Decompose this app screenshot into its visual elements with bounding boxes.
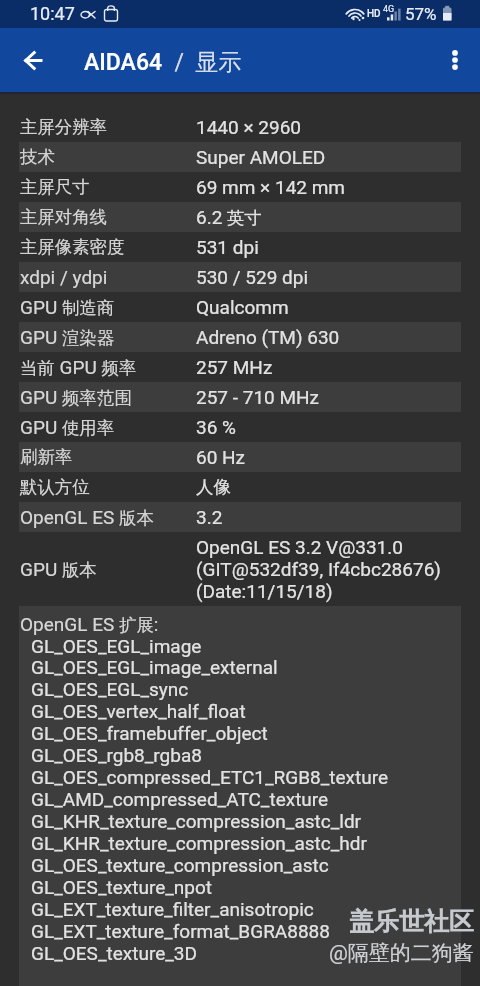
- staticText: 257 - 710 MHz: [196, 386, 320, 408]
- staticText: 4G: [383, 4, 395, 15]
- staticText: HD: [367, 8, 381, 20]
- staticText: / 显示: [163, 48, 242, 77]
- button[interactable]: 主屏对角线: [0, 202, 480, 232]
- staticText: 530 / 529 dpi: [196, 266, 309, 288]
- staticText: @隔壁的二狗酱: [329, 940, 474, 966]
- button[interactable]: GPU 版本: [0, 532, 480, 606]
- button[interactable]: 当前 GPU 频率: [0, 352, 480, 382]
- staticText: 人像: [196, 476, 231, 498]
- button[interactable]: OpenGL ES 扩展:: [0, 606, 480, 986]
- staticText: 刷新率: [20, 446, 73, 468]
- staticText: 盖乐世社区: [349, 906, 474, 937]
- staticText: GL_OES_EGL_image GL_OES_EGL_image_extern…: [31, 635, 389, 965]
- button[interactable]: xdpi / ydpi: [0, 262, 480, 292]
- staticText: 主屏对角线: [20, 206, 107, 228]
- button[interactable]: 主屏尺寸: [0, 172, 480, 202]
- button[interactable]: 刷新率: [0, 442, 480, 472]
- staticText: GPU 渲染器: [20, 326, 115, 349]
- button[interactable]: Back: [9, 36, 57, 84]
- staticText: Adreno (TM) 630: [196, 326, 340, 348]
- button[interactable]: 主屏像素密度: [0, 232, 480, 262]
- staticText: 60 Hz: [196, 446, 246, 468]
- staticText: (GIT@532df39, If4cbc28676): [196, 558, 441, 580]
- button[interactable]: GPU 使用率: [0, 412, 480, 442]
- button[interactable]: OpenGL ES 版本: [0, 502, 480, 532]
- staticText: GPU 版本: [20, 558, 97, 581]
- staticText: 主屏像素密度: [20, 236, 125, 258]
- staticText: 6.2 英寸: [196, 206, 262, 229]
- staticText: GPU 使用率: [20, 416, 115, 439]
- staticText: 36 %: [196, 416, 236, 438]
- staticText: 技术: [20, 146, 55, 168]
- button[interactable]: 默认方位: [0, 472, 480, 502]
- staticText: 当前 GPU 频率: [20, 356, 137, 379]
- button[interactable]: 技术: [0, 142, 480, 172]
- staticText: 默认方位: [20, 476, 90, 498]
- staticText: 1440 × 2960: [196, 116, 301, 138]
- button[interactable]: 主屏分辨率: [0, 112, 480, 142]
- button[interactable]: GPU 渲染器: [0, 322, 480, 352]
- staticText: Qualcomm: [196, 296, 289, 318]
- staticText: 57%: [405, 4, 437, 24]
- button[interactable]: GPU 频率范围: [0, 382, 480, 412]
- staticText: AIDA64: [84, 49, 163, 76]
- staticText: (Date:11/15/18): [196, 580, 333, 602]
- staticText: xdpi / ydpi: [20, 266, 108, 288]
- staticText: OpenGL ES 版本: [20, 506, 154, 529]
- staticText: 主屏分辨率: [20, 116, 107, 138]
- staticText: 10:47: [30, 3, 75, 24]
- staticText: 3.2: [196, 506, 223, 528]
- staticText: 257 MHz: [196, 356, 273, 378]
- staticText: 531 dpi: [196, 236, 259, 258]
- button[interactable]: GPU 制造商: [0, 292, 480, 322]
- button[interactable]: More options: [431, 36, 479, 84]
- staticText: 主屏尺寸: [20, 176, 90, 198]
- staticText: OpenGL ES 3.2 V@331.0: [196, 536, 403, 558]
- staticText: Super AMOLED: [196, 146, 326, 168]
- staticText: OpenGL ES 扩展:: [20, 613, 159, 636]
- staticText: GPU 频率范围: [20, 386, 132, 409]
- staticText: GPU 制造商: [20, 296, 115, 319]
- staticText: 69 mm × 142 mm: [196, 176, 346, 198]
